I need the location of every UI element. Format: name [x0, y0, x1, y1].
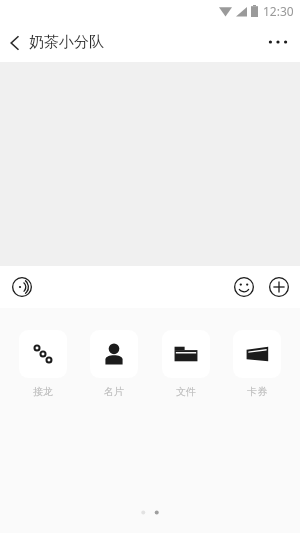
- button[interactable]: Add attachment: [264, 272, 294, 302]
- staticText: 名片: [104, 385, 124, 398]
- button[interactable]: 文件: [157, 330, 215, 398]
- staticText: 12:30: [263, 3, 294, 19]
- other: Back: [10, 35, 20, 51]
- staticText: 文件: [176, 385, 196, 398]
- button[interactable]: 卡券: [228, 330, 286, 398]
- staticText: 接龙: [33, 385, 53, 398]
- button[interactable]: Voice input: [6, 271, 38, 303]
- button[interactable]: 名片: [85, 330, 143, 398]
- staticText: 奶茶小分队: [29, 33, 104, 52]
- button[interactable]: More options: [256, 29, 300, 55]
- button[interactable]: Back: [0, 27, 112, 58]
- button[interactable]: 接龙: [14, 330, 72, 398]
- button[interactable]: Emoji: [229, 272, 259, 302]
- staticText: 卡券: [247, 385, 267, 398]
